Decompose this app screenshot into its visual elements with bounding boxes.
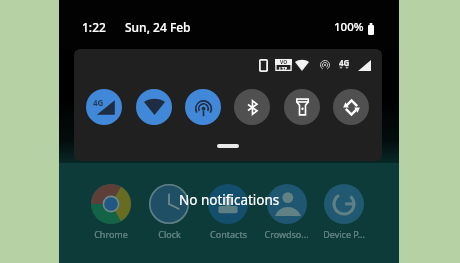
button[interactable]: Crowdso... <box>258 184 314 244</box>
button[interactable]: Hotspot <box>185 89 221 125</box>
staticText: 1:22 <box>82 19 106 35</box>
staticText: 100% <box>334 19 364 35</box>
button[interactable]: Expand quick settings <box>217 144 239 148</box>
button[interactable]: Wi-Fi <box>136 89 172 125</box>
staticText: 4G <box>93 97 104 108</box>
staticText: 4G <box>339 57 350 68</box>
staticText: VO <box>280 59 288 66</box>
staticText: LTE <box>279 66 288 71</box>
button[interactable]: Device P... <box>316 184 372 244</box>
button[interactable]: Contacts <box>200 184 256 244</box>
staticText: Sun, 24 Feb <box>125 19 191 35</box>
staticText: Device P... <box>323 228 365 240</box>
button[interactable]: Auto rotate <box>333 89 369 125</box>
staticText: Crowdso... <box>264 228 309 240</box>
staticText: Contacts <box>210 228 247 240</box>
button[interactable]: Clock <box>141 184 197 244</box>
staticText: Clock <box>158 228 181 240</box>
button[interactable]: Flashlight <box>284 89 320 125</box>
button[interactable]: Mobile data <box>86 89 122 125</box>
button[interactable]: Bluetooth <box>234 89 270 125</box>
button[interactable]: Chrome <box>83 184 139 244</box>
staticText: Chrome <box>94 228 128 240</box>
staticText: No notifications <box>179 191 280 209</box>
